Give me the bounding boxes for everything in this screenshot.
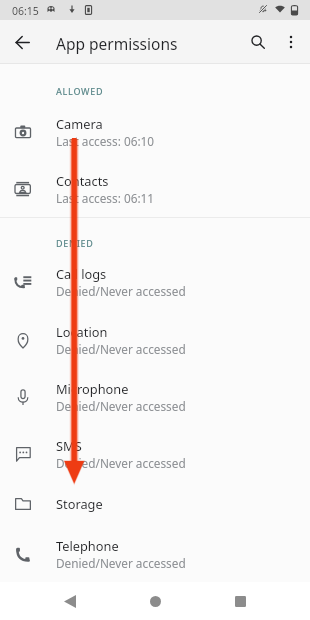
staticText: 06:15 [12,4,39,18]
staticText: DENIED [56,237,94,249]
staticText: Denied/Never accessed [56,283,186,299]
staticText: Telephone [56,537,119,554]
button[interactable]: Camera [0,103,310,160]
button[interactable]: Back [47,582,92,620]
staticText: Microphone [56,380,129,397]
button[interactable]: Telephone [0,525,310,582]
staticText: Last access: 06:11 [56,190,155,206]
staticText: Denied/Never accessed [56,455,186,471]
staticText: Denied/Never accessed [56,398,186,414]
staticText: ALLOWED [56,85,104,97]
button[interactable]: Microphone [0,368,310,425]
button[interactable]: Location [0,311,310,368]
staticText: SMS [56,437,82,454]
staticText: App permissions [56,33,178,54]
button[interactable]: Back [6,26,39,59]
button[interactable]: SMS [0,425,310,482]
button[interactable]: Storage [0,482,310,525]
staticText: Denied/Never accessed [56,555,186,571]
staticText: Call logs [56,265,107,282]
button[interactable]: Home [133,582,178,620]
button[interactable]: Call logs [0,253,310,310]
button[interactable]: Search [242,26,274,58]
staticText: Denied/Never accessed [56,341,186,357]
staticText: Last access: 06:10 [56,133,155,149]
staticText: Location [56,323,108,340]
staticText: Storage [56,495,103,512]
button[interactable]: More options [275,26,307,58]
staticText: Camera [56,115,103,132]
staticText: Contacts [56,172,109,189]
button[interactable]: Contacts [0,160,310,217]
button[interactable]: Recent apps [218,582,263,620]
